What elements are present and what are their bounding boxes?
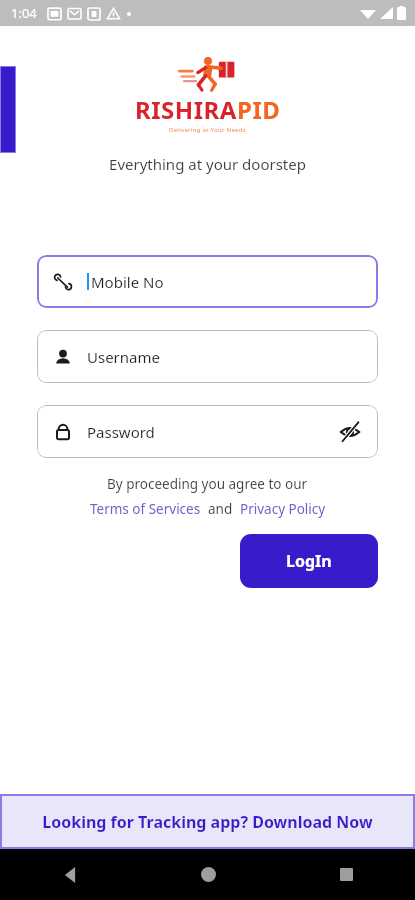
button[interactable]: Back xyxy=(0,849,139,900)
staticText: Privacy Policy xyxy=(240,500,326,518)
button[interactable]: LogIn xyxy=(240,534,378,588)
staticText: and xyxy=(201,500,240,518)
staticText: Everything at your doorstep xyxy=(0,154,415,174)
staticText: By proceeding you agree to our xyxy=(107,475,308,493)
button[interactable]: Terms of Services xyxy=(90,500,201,518)
staticText: Mobile No xyxy=(91,272,164,292)
staticText: 1:04 xyxy=(11,4,37,22)
staticText: PID xyxy=(237,93,281,126)
staticText: Password xyxy=(87,422,155,442)
button[interactable]: Show password xyxy=(337,419,363,445)
staticText: Delivering at Your Needs xyxy=(169,126,246,134)
button[interactable]: Username xyxy=(37,330,378,383)
button[interactable]: Recent apps xyxy=(277,849,415,900)
button[interactable]: Password xyxy=(37,405,378,458)
staticText: Looking for Tracking app? Download Now xyxy=(42,811,373,833)
staticText: LogIn xyxy=(286,550,332,572)
staticText: RISHIRA xyxy=(135,93,237,126)
button[interactable]: Privacy Policy xyxy=(240,500,326,518)
button[interactable]: Home xyxy=(139,849,277,900)
button[interactable]: Mobile No xyxy=(37,255,378,308)
button[interactable]: Looking for Tracking app? Download Now xyxy=(0,794,415,849)
staticText: Username xyxy=(87,347,160,367)
staticText: Terms of Services xyxy=(90,500,201,518)
